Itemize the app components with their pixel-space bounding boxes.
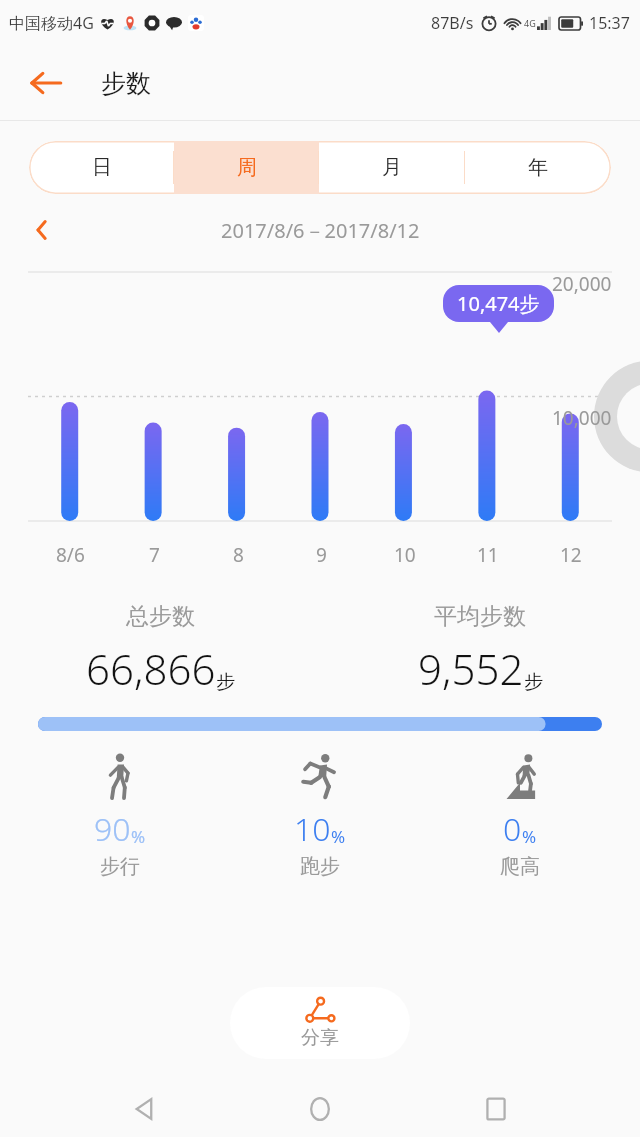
- button[interactable]: Recent apps: [465, 1080, 527, 1137]
- staticText: %: [131, 825, 146, 848]
- button[interactable]: Previous week: [22, 210, 62, 250]
- staticText: 0: [503, 807, 522, 851]
- staticText: 日: [92, 155, 112, 180]
- staticText: 10,474步: [457, 290, 540, 317]
- staticText: 8: [233, 542, 244, 568]
- button[interactable]: 日: [29, 141, 174, 194]
- staticText: 中国移动4G: [9, 12, 94, 34]
- staticText: %: [522, 825, 537, 848]
- button[interactable]: Back: [114, 1080, 176, 1137]
- staticText: 步: [216, 670, 235, 694]
- staticText: 20,000: [552, 271, 612, 297]
- staticText: 10: [394, 542, 416, 568]
- staticText: 11: [477, 542, 499, 568]
- staticText: 66,866: [86, 640, 216, 697]
- button[interactable]: 分享: [230, 987, 410, 1059]
- staticText: %: [331, 825, 346, 848]
- staticText: 周: [237, 155, 257, 180]
- button[interactable]: 周: [174, 141, 319, 194]
- staticText: 8/6: [56, 542, 85, 568]
- staticText: 年: [528, 155, 548, 180]
- staticText: 90: [94, 807, 131, 851]
- button[interactable]: 90: [20, 753, 220, 879]
- staticText: 9: [316, 542, 327, 568]
- staticText: 月: [382, 155, 402, 180]
- staticText: 9,552: [418, 640, 524, 697]
- staticText: 爬高: [500, 854, 540, 879]
- button[interactable]: 10: [220, 753, 420, 879]
- staticText: 总步数: [126, 602, 195, 631]
- staticText: 步数: [101, 68, 151, 99]
- staticText: 12: [560, 542, 582, 568]
- staticText: 4G: [524, 17, 536, 29]
- button[interactable]: 月: [319, 141, 465, 194]
- staticText: 7: [149, 542, 160, 568]
- button[interactable]: Home: [289, 1080, 351, 1137]
- staticText: 10,000: [552, 405, 612, 431]
- button[interactable]: 年: [465, 141, 611, 194]
- staticText: 步: [524, 670, 543, 694]
- button[interactable]: 0: [420, 753, 620, 879]
- staticText: 分享: [301, 1026, 339, 1050]
- staticText: 10: [294, 807, 331, 851]
- button[interactable]: Back: [22, 59, 70, 107]
- staticText: 平均步数: [434, 602, 526, 631]
- staticText: 2017/8/6－2017/8/12: [221, 217, 420, 244]
- staticText: 15:37: [589, 12, 630, 34]
- staticText: 87B/s: [431, 12, 474, 34]
- staticText: 步行: [100, 854, 140, 879]
- staticText: 跑步: [300, 854, 340, 879]
